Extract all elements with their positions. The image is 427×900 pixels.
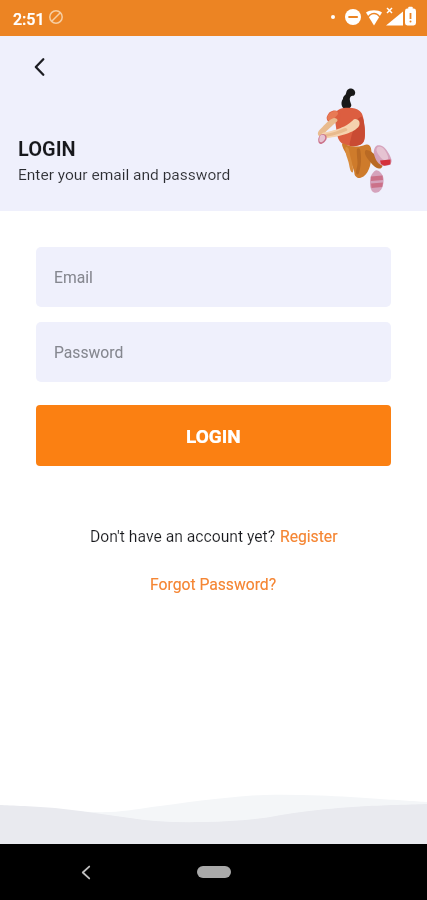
staticText: Email — [54, 268, 93, 286]
button[interactable]: Back — [68, 854, 104, 890]
button[interactable]: LOGIN — [36, 405, 391, 466]
staticText: Don't have an account yet? — [90, 527, 280, 545]
button[interactable]: Home — [197, 866, 231, 878]
button[interactable]: Forgot Password? — [150, 575, 277, 593]
button[interactable]: Register — [280, 527, 338, 545]
staticText: Forgot Password? — [150, 575, 277, 593]
staticText: LOGIN — [186, 425, 241, 447]
staticText: Register — [280, 527, 338, 545]
staticText: Password — [54, 343, 124, 361]
staticText: Enter your email and password — [18, 166, 231, 184]
button[interactable]: Password — [36, 322, 391, 382]
staticText: 2:51 — [13, 10, 45, 29]
staticText: LOGIN — [18, 137, 76, 160]
button[interactable]: Back — [22, 49, 58, 85]
button[interactable]: Email — [36, 247, 391, 307]
